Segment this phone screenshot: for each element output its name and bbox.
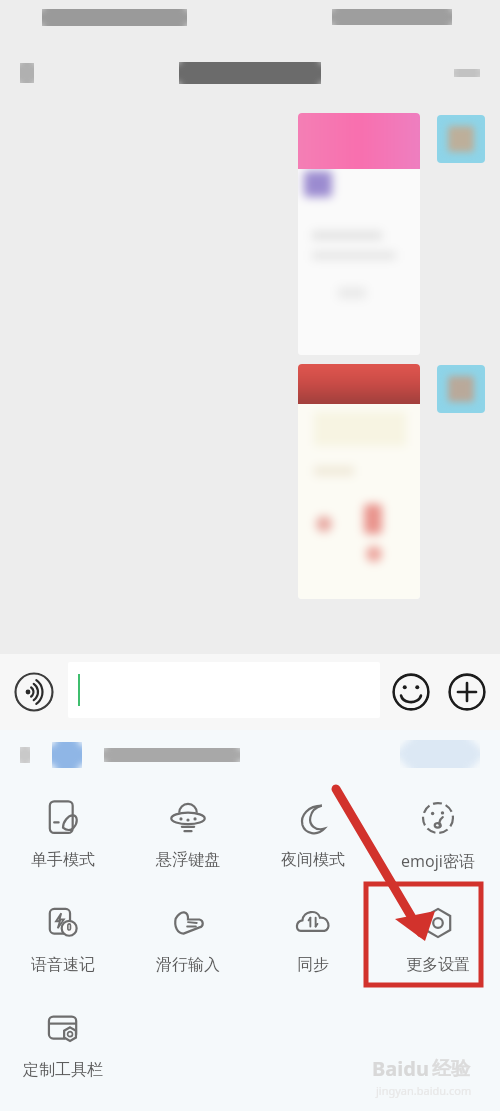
staticText: 单手模式 [31, 850, 95, 870]
button[interactable]: Voice input [14, 672, 54, 712]
staticText: 定制工具栏 [23, 1060, 103, 1080]
button[interactable]: More functions [448, 673, 486, 711]
button[interactable]: 夜间模式 [250, 778, 375, 883]
staticText: Baidu [372, 1055, 429, 1082]
button[interactable]: emoji密语 [375, 778, 500, 883]
button[interactable]: 单手模式 [0, 778, 125, 883]
staticText: 经验 [432, 1057, 470, 1081]
button[interactable]: Avatar [437, 115, 485, 163]
staticText: 语音速记 [31, 955, 95, 975]
button[interactable]: Back [20, 63, 34, 83]
button[interactable] [298, 364, 420, 599]
button[interactable] [68, 662, 380, 718]
button[interactable]: 同步 [250, 883, 375, 988]
staticText: 更多设置 [406, 955, 470, 975]
button[interactable]: 更多设置 [375, 883, 500, 988]
button[interactable]: 悬浮键盘 [125, 778, 250, 883]
staticText: 滑行输入 [156, 955, 220, 975]
button[interactable] [298, 113, 420, 355]
button[interactable]: Avatar [437, 365, 485, 413]
button[interactable]: Emoji [392, 673, 430, 711]
staticText: emoji密语 [401, 850, 475, 872]
staticText: 夜间模式 [281, 850, 345, 870]
staticText: 悬浮键盘 [156, 850, 220, 870]
button[interactable]: 定制工具栏 [0, 988, 125, 1100]
button[interactable]: 语音速记 [0, 883, 125, 988]
button[interactable]: 滑行输入 [125, 883, 250, 988]
staticText: 同步 [297, 955, 329, 975]
staticText: jingyan.baidu.com [376, 1083, 472, 1098]
